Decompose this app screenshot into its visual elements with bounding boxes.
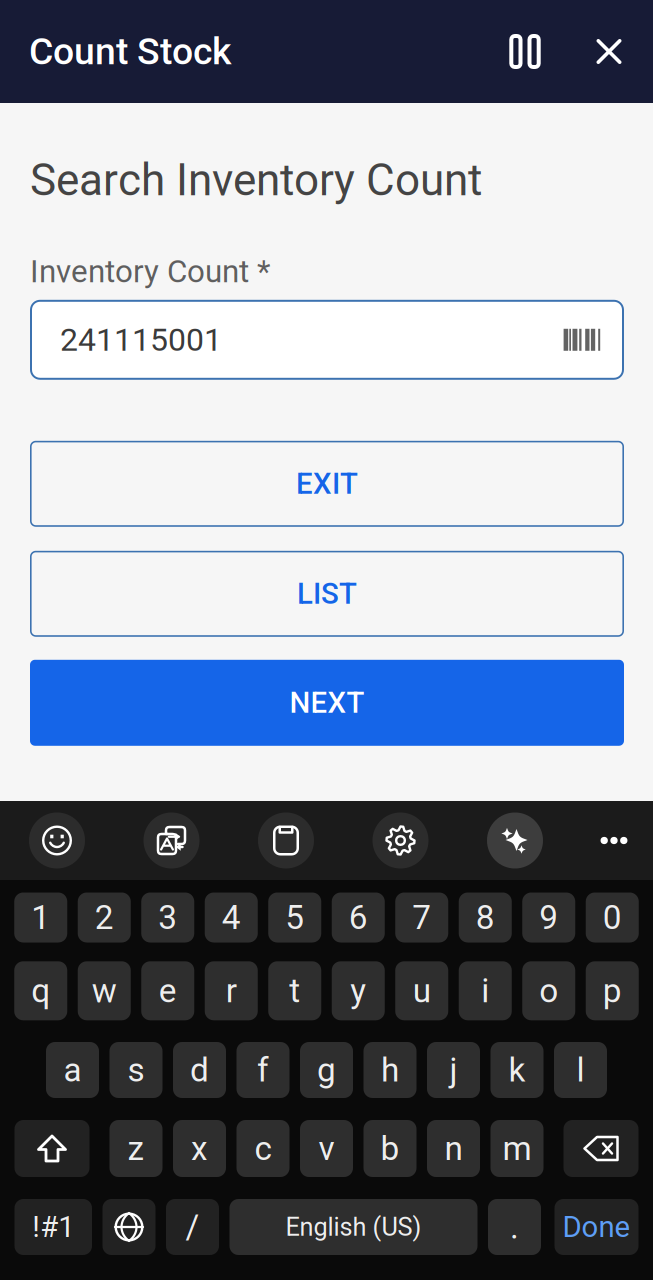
button[interactable]: NEXT	[30, 660, 624, 746]
button[interactable]: x	[173, 1120, 226, 1177]
button[interactable]: b	[363, 1120, 416, 1177]
staticText: 6	[349, 898, 368, 937]
staticText: n	[444, 1129, 462, 1168]
staticText: 3	[158, 898, 177, 937]
staticText: u	[413, 971, 431, 1010]
staticText: o	[539, 971, 558, 1010]
staticText: w	[92, 971, 117, 1010]
staticText: s	[127, 1050, 144, 1090]
button[interactable]: EXIT	[30, 441, 624, 527]
staticText: .	[510, 1207, 519, 1247]
button[interactable]: !#1	[14, 1199, 92, 1255]
staticText: 8	[476, 898, 495, 937]
button[interactable]: u	[395, 961, 448, 1020]
staticText: 4	[222, 898, 241, 937]
button[interactable]: j	[427, 1042, 480, 1098]
staticText: m	[502, 1129, 531, 1168]
staticText: v	[318, 1129, 334, 1168]
staticText: q	[31, 971, 50, 1010]
button[interactable]: t	[268, 961, 321, 1020]
staticText: g	[317, 1050, 336, 1090]
staticText: r	[226, 971, 237, 1010]
button[interactable]: 1	[14, 892, 67, 942]
button[interactable]: s	[109, 1042, 162, 1098]
button[interactable]: z	[109, 1120, 162, 1177]
staticText: p	[603, 971, 622, 1010]
button[interactable]: q	[14, 961, 67, 1020]
button[interactable]: 2	[78, 892, 131, 942]
button[interactable]	[102, 1199, 155, 1255]
button[interactable]: w	[78, 961, 131, 1020]
staticText: j	[449, 1050, 457, 1090]
button[interactable]: o	[522, 961, 575, 1020]
button[interactable]: a	[46, 1042, 99, 1098]
button[interactable]: Close	[581, 23, 637, 79]
button[interactable]: .	[488, 1199, 541, 1255]
button[interactable]: 6	[332, 892, 385, 942]
staticText: c	[254, 1129, 271, 1168]
staticText: 7	[412, 898, 431, 937]
button[interactable]: Clipboard	[258, 812, 314, 868]
button[interactable]: r	[205, 961, 258, 1020]
staticText: EXIT	[296, 467, 358, 501]
staticText: h	[381, 1050, 399, 1090]
button[interactable]: c	[236, 1120, 289, 1177]
staticText: Count Stock	[29, 30, 231, 73]
staticText: /	[185, 1207, 199, 1247]
button[interactable]: Emoji	[29, 812, 85, 868]
button[interactable]: 3	[141, 892, 194, 942]
staticText: English (US)	[285, 1212, 421, 1242]
button[interactable]: 5	[268, 892, 321, 942]
button[interactable]: v	[300, 1120, 353, 1177]
button[interactable]: /	[166, 1199, 219, 1255]
button[interactable]: LIST	[30, 551, 624, 637]
button[interactable]: Pause	[497, 23, 553, 79]
button[interactable]: 7	[395, 892, 448, 942]
button[interactable]: e	[141, 961, 194, 1020]
staticText: LIST	[297, 577, 357, 611]
staticText: 241115001	[60, 321, 222, 358]
staticText: y	[350, 971, 366, 1010]
button[interactable]: 8	[459, 892, 512, 942]
button[interactable]: AI assist	[487, 812, 543, 868]
staticText: k	[508, 1050, 525, 1090]
button[interactable]: f	[236, 1042, 289, 1098]
button[interactable]: m	[490, 1120, 543, 1177]
staticText: !#1	[32, 1210, 74, 1244]
staticText: 9	[539, 898, 558, 937]
staticText: 2	[95, 898, 114, 937]
staticText: f	[257, 1050, 269, 1090]
staticText: e	[159, 971, 177, 1010]
staticText: Inventory Count *	[30, 253, 270, 290]
staticText: t	[289, 971, 300, 1010]
staticText: b	[380, 1129, 399, 1168]
button[interactable]: p	[586, 961, 639, 1020]
button[interactable]: Settings	[372, 812, 428, 868]
button[interactable]: i	[459, 961, 512, 1020]
staticText: l	[576, 1050, 584, 1090]
button[interactable]: Done	[554, 1199, 638, 1255]
button[interactable]: g	[300, 1042, 353, 1098]
staticText: 1	[31, 898, 50, 937]
button[interactable]: 4	[205, 892, 258, 942]
button[interactable]: k	[490, 1042, 543, 1098]
staticText: 5	[285, 898, 304, 937]
staticText: z	[127, 1129, 144, 1168]
button[interactable]: English (US)	[229, 1199, 477, 1255]
staticText: x	[191, 1129, 208, 1168]
staticText: 0	[603, 898, 622, 937]
button[interactable]: 0	[586, 892, 639, 942]
button[interactable]: 9	[522, 892, 575, 942]
button[interactable]: Translate	[143, 812, 199, 868]
staticText: i	[481, 971, 489, 1010]
button[interactable]: More options	[589, 812, 639, 868]
button[interactable]: n	[427, 1120, 480, 1177]
button[interactable]	[14, 1120, 89, 1177]
button[interactable]: l	[554, 1042, 607, 1098]
button[interactable]	[563, 1120, 638, 1177]
button[interactable]: y	[332, 961, 385, 1020]
staticText: d	[190, 1050, 209, 1090]
button[interactable]: d	[173, 1042, 226, 1098]
staticText: Search Inventory Count	[30, 154, 482, 206]
button[interactable]: h	[363, 1042, 416, 1098]
